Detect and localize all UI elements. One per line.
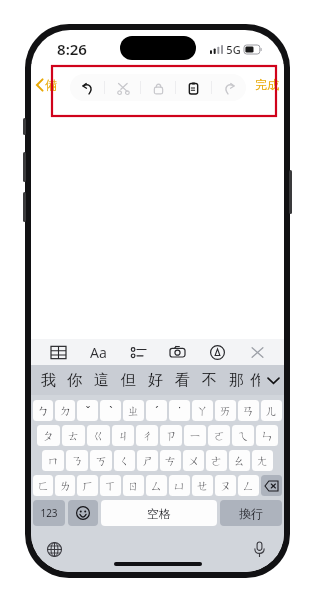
staticText: ㄖ (127, 478, 140, 493)
button[interactable]: ㄎ (90, 450, 112, 471)
staticText: ㄌ (59, 478, 72, 493)
staticText: 123 (40, 506, 58, 520)
staticText: ㄒ (104, 478, 117, 493)
button[interactable]: ㄊ (62, 425, 85, 446)
button[interactable]: ㄓ (123, 400, 144, 421)
staticText: ㄩ (173, 478, 186, 493)
button[interactable]: ㄙ (146, 475, 167, 496)
button[interactable]: Back (31, 73, 61, 96)
staticText: 備 (45, 77, 57, 92)
staticText: 換行 (239, 506, 263, 521)
button[interactable]: ㄤ (252, 450, 273, 471)
button[interactable]: ㄆ (37, 425, 60, 446)
staticText: ㄛ (213, 428, 226, 443)
button[interactable]: ㄠ (229, 450, 250, 471)
button[interactable]: ㄝ (192, 475, 213, 496)
button[interactable]: ㄇ (42, 450, 64, 471)
button[interactable]: ㄑ (114, 450, 135, 471)
button[interactable]: 但 (115, 365, 142, 395)
button[interactable]: ㄢ (238, 400, 259, 421)
button[interactable]: Backspace (261, 475, 282, 496)
button[interactable]: ㄗ (160, 425, 182, 446)
button[interactable]: ㄐ (112, 425, 134, 446)
button[interactable]: ˋ (100, 400, 121, 421)
button[interactable]: Aa (85, 341, 111, 363)
button[interactable]: Paste (180, 75, 206, 101)
button[interactable]: ㄋ (66, 450, 88, 471)
staticText: ㄐ (117, 428, 130, 443)
button[interactable]: Copy (145, 75, 171, 101)
button[interactable]: ㄧ (184, 425, 206, 446)
button[interactable]: Undo (74, 75, 100, 101)
button[interactable]: 空格 (101, 500, 217, 526)
button[interactable]: Markup (204, 341, 230, 363)
button[interactable]: ˇ (77, 400, 98, 421)
staticText: ㄓ (127, 403, 140, 418)
button[interactable]: 完成 (250, 73, 284, 96)
button[interactable]: ㄌ (55, 475, 75, 496)
button[interactable]: ˊ (146, 400, 167, 421)
button[interactable]: 不 (196, 365, 223, 395)
button[interactable]: ㄒ (100, 475, 121, 496)
button[interactable]: Table (45, 341, 71, 363)
button[interactable]: Emoji (68, 500, 98, 526)
staticText: ㄅ (37, 403, 50, 418)
button[interactable]: ㄣ (256, 425, 278, 446)
button[interactable]: ㄕ (137, 450, 158, 471)
staticText: ㄣ (261, 428, 274, 443)
staticText: ㄚ (196, 403, 209, 418)
button[interactable]: ㄘ (160, 450, 181, 471)
staticText: ㄨ (187, 453, 200, 468)
button[interactable]: ㄖ (123, 475, 144, 496)
staticText: 但 (121, 371, 136, 390)
staticText: 那 (229, 371, 244, 390)
button[interactable]: Close (244, 341, 270, 363)
staticText: ˇ (85, 403, 91, 419)
other: Back (36, 78, 44, 92)
button[interactable]: ˙ (169, 400, 190, 421)
button[interactable]: 看 (169, 365, 196, 395)
button[interactable]: ㄥ (238, 475, 259, 496)
button[interactable]: ㄩ (169, 475, 190, 496)
button[interactable]: ㄞ (215, 400, 236, 421)
button[interactable]: ㄔ (136, 425, 158, 446)
button[interactable]: 你 (61, 365, 88, 395)
staticText: ㄙ (150, 478, 163, 493)
button[interactable]: ㄉ (55, 400, 75, 421)
button[interactable]: ㄜ (206, 450, 227, 471)
button[interactable]: ㄅ (33, 400, 53, 421)
button[interactable]: Redo (216, 75, 242, 101)
staticText: ㄗ (165, 428, 178, 443)
button[interactable]: ㄏ (77, 475, 98, 496)
button[interactable]: 換行 (220, 500, 282, 526)
staticText: ˊ (155, 403, 159, 419)
button[interactable]: 這 (88, 365, 115, 395)
button[interactable]: ㄛ (208, 425, 230, 446)
button[interactable]: 好 (142, 365, 169, 395)
button[interactable]: ㄍ (87, 425, 110, 446)
staticText: 你 (67, 371, 82, 390)
button[interactable]: Cut (110, 75, 136, 101)
staticText: ㄥ (242, 478, 255, 493)
button[interactable]: ㄡ (215, 475, 236, 496)
button[interactable]: 123 (33, 500, 65, 526)
button[interactable]: ㄨ (183, 450, 204, 471)
staticText: ㄠ (233, 453, 246, 468)
staticText: ㄘ (164, 453, 177, 468)
button[interactable]: Switch keyboard (41, 536, 67, 562)
button[interactable]: ㄟ (232, 425, 254, 446)
staticText: ㄡ (219, 478, 232, 493)
staticText: 5G (226, 42, 241, 57)
button[interactable]: Camera (164, 341, 190, 363)
button[interactable]: More candidates (262, 365, 284, 395)
button[interactable]: 那 (223, 365, 250, 395)
button[interactable]: ㄈ (33, 475, 53, 496)
staticText: ㄍ (92, 428, 105, 443)
button[interactable]: 我 (35, 365, 61, 395)
button[interactable]: List (125, 341, 151, 363)
button[interactable]: Dictation (246, 536, 272, 562)
staticText: ㄇ (47, 453, 60, 468)
button[interactable]: ㄚ (192, 400, 213, 421)
button[interactable]: ㄦ (261, 400, 282, 421)
staticText: ㄟ (237, 428, 250, 443)
